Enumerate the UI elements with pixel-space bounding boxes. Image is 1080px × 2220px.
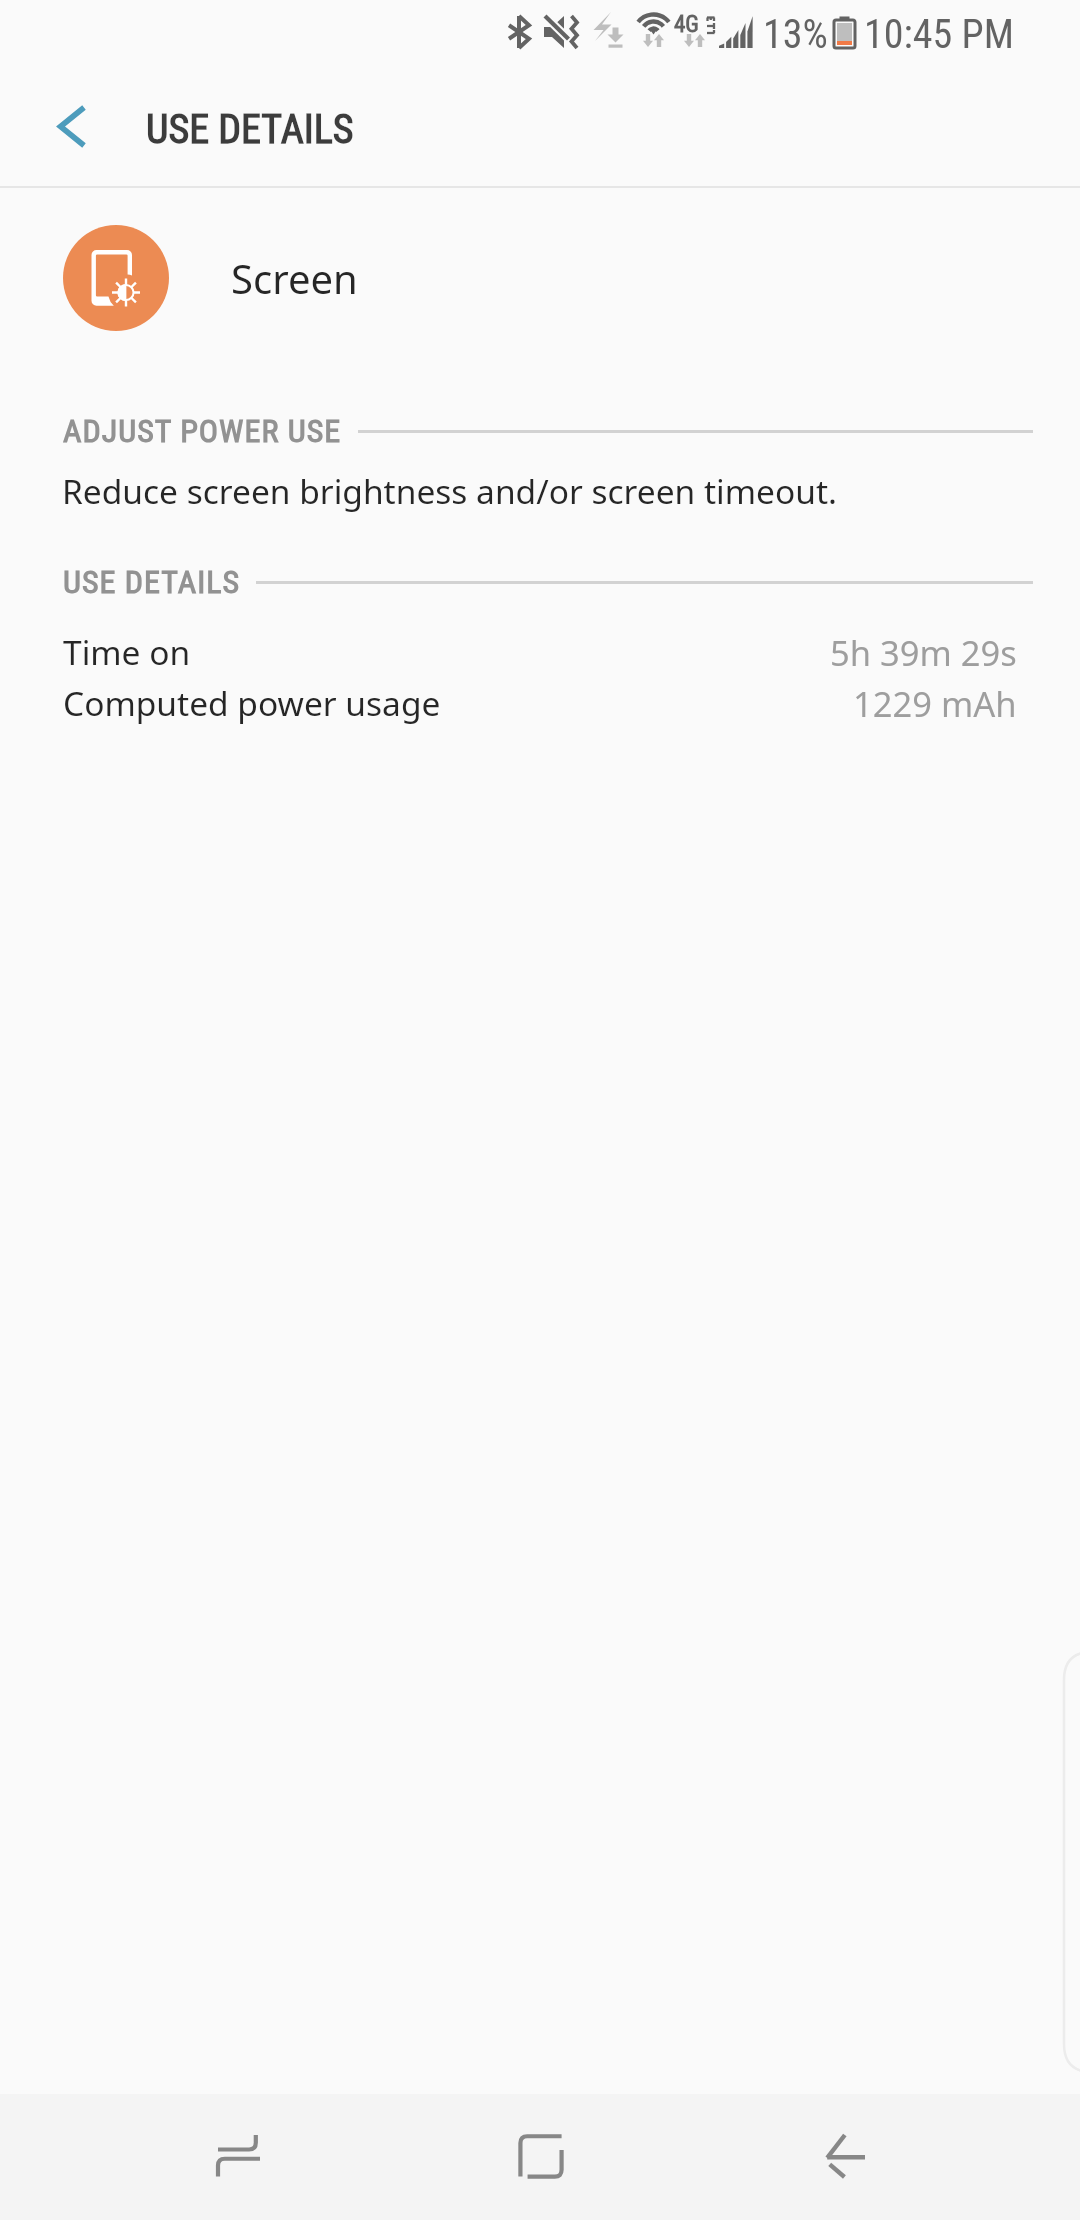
staticText: Reduce screen brightness and/or screen t…: [62, 468, 837, 514]
button[interactable]: Screen: [0, 188, 1080, 369]
staticText: USE DETAILS: [146, 106, 354, 153]
staticText: USE DETAILS: [63, 563, 240, 601]
staticText: 5h 39m 29s: [830, 629, 1017, 673]
button[interactable]: Back: [16, 66, 126, 186]
staticText: Time on: [63, 629, 191, 673]
button[interactable]: Recents: [149, 2094, 329, 2220]
staticText: Computed power usage: [63, 680, 441, 724]
staticText: 4G: [674, 11, 699, 38]
button[interactable]: Home: [451, 2094, 631, 2220]
button[interactable]: Back: [754, 2094, 934, 2220]
staticText: ADJUST POWER USE: [63, 412, 342, 450]
staticText: 10:45 PM: [864, 11, 1014, 58]
staticText: 1229 mAh: [853, 680, 1017, 724]
staticText: 13%: [763, 11, 828, 58]
staticText: Screen: [231, 251, 358, 305]
